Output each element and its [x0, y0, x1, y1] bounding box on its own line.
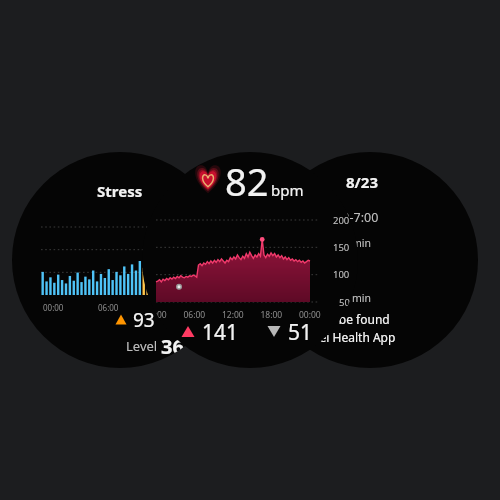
button[interactable]: Huawei watch health screens: [0, 0, 500, 500]
